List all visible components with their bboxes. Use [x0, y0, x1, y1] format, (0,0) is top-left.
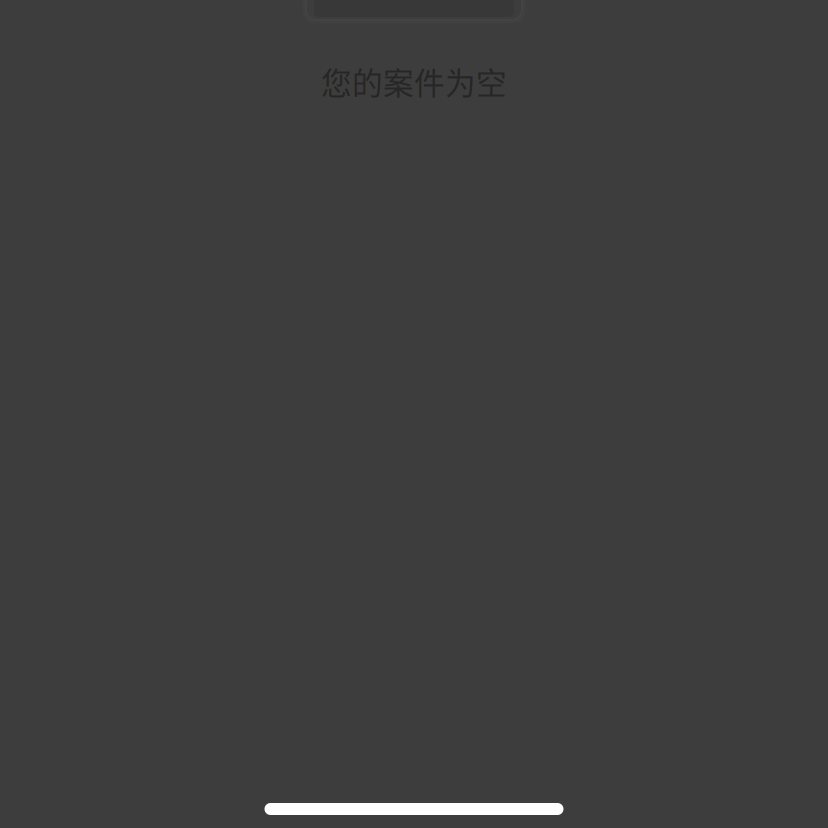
staticText: 您的案件为空 [321, 59, 507, 103]
